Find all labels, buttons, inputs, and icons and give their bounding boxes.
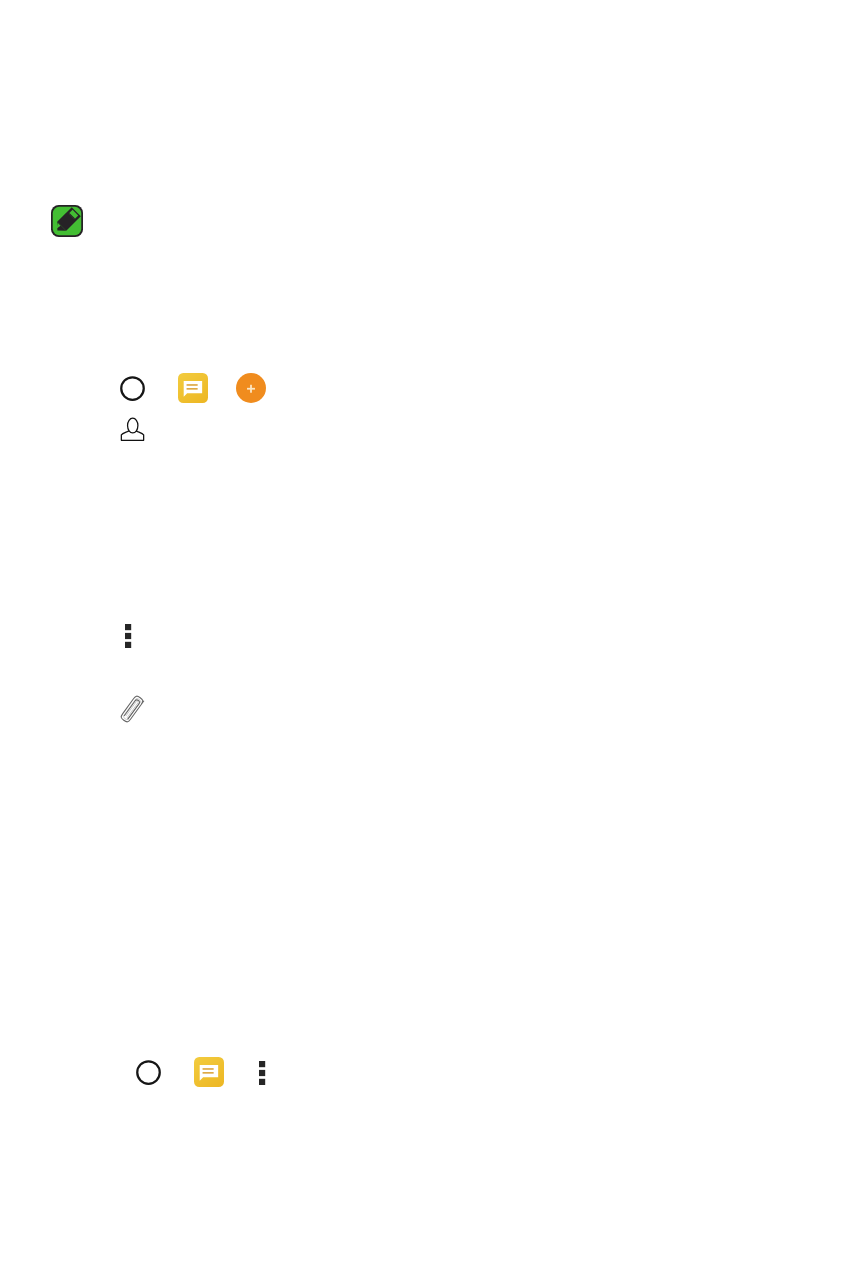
button[interactable]: Messages	[194, 1057, 224, 1087]
button[interactable]: More options	[125, 624, 132, 648]
button[interactable]: More options	[259, 1061, 266, 1085]
button[interactable]: Attach file	[117, 694, 147, 724]
button[interactable]: Contact	[121, 418, 144, 441]
button[interactable]: Messages	[178, 373, 208, 403]
button[interactable]: Compose new note	[51, 205, 83, 237]
button[interactable]: Select conversation	[120, 376, 145, 401]
button[interactable]: Select	[136, 1060, 161, 1085]
button[interactable]: Start new chat	[236, 373, 266, 403]
